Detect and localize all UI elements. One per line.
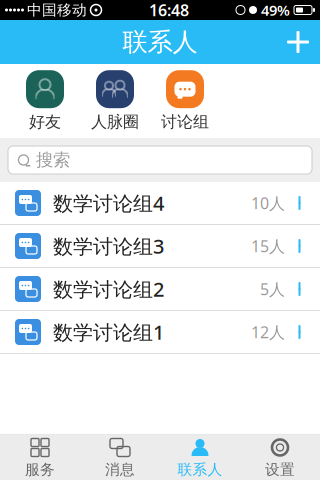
staticText: 联系人 [122, 26, 197, 57]
staticText: 人脉圈 [91, 112, 139, 132]
staticText: 好友 [29, 112, 61, 132]
staticText: 数学讨论组1 [53, 319, 164, 345]
staticText: 16:48 [149, 0, 189, 21]
staticText: 消息 [105, 460, 135, 478]
button[interactable]: 数学讨论组4 [0, 182, 320, 224]
button[interactable]: 联系人 [160, 435, 240, 480]
staticText: 10人 [251, 192, 285, 214]
staticText: 5人 [260, 278, 285, 300]
button[interactable]: 设置 [240, 435, 320, 480]
staticText: 15人 [251, 235, 285, 257]
staticText: 数学讨论组4 [53, 190, 164, 216]
button[interactable]: 讨论组 [150, 68, 220, 134]
staticText: 讨论组 [161, 112, 209, 132]
staticText: 中国移动 [27, 1, 87, 19]
staticText: 数学讨论组2 [53, 276, 164, 302]
button[interactable]: 人脉圈 [80, 68, 150, 134]
button[interactable]: 数学讨论组2 [0, 268, 320, 310]
button[interactable]: 搜索 [8, 146, 312, 174]
button[interactable]: 好友 [10, 68, 80, 134]
staticText: 联系人 [177, 460, 222, 478]
staticText: 12人 [251, 321, 285, 343]
button[interactable]: 添加 [276, 20, 320, 64]
button[interactable]: 数学讨论组3 [0, 225, 320, 267]
staticText: 搜索 [36, 149, 70, 171]
button[interactable]: 服务 [0, 435, 80, 480]
staticText: 设置 [265, 460, 295, 478]
staticText: 数学讨论组3 [53, 233, 164, 259]
button[interactable]: 消息 [80, 435, 160, 480]
staticText: 49% [261, 0, 290, 20]
button[interactable]: 数学讨论组1 [0, 311, 320, 353]
staticText: 服务 [25, 460, 55, 478]
